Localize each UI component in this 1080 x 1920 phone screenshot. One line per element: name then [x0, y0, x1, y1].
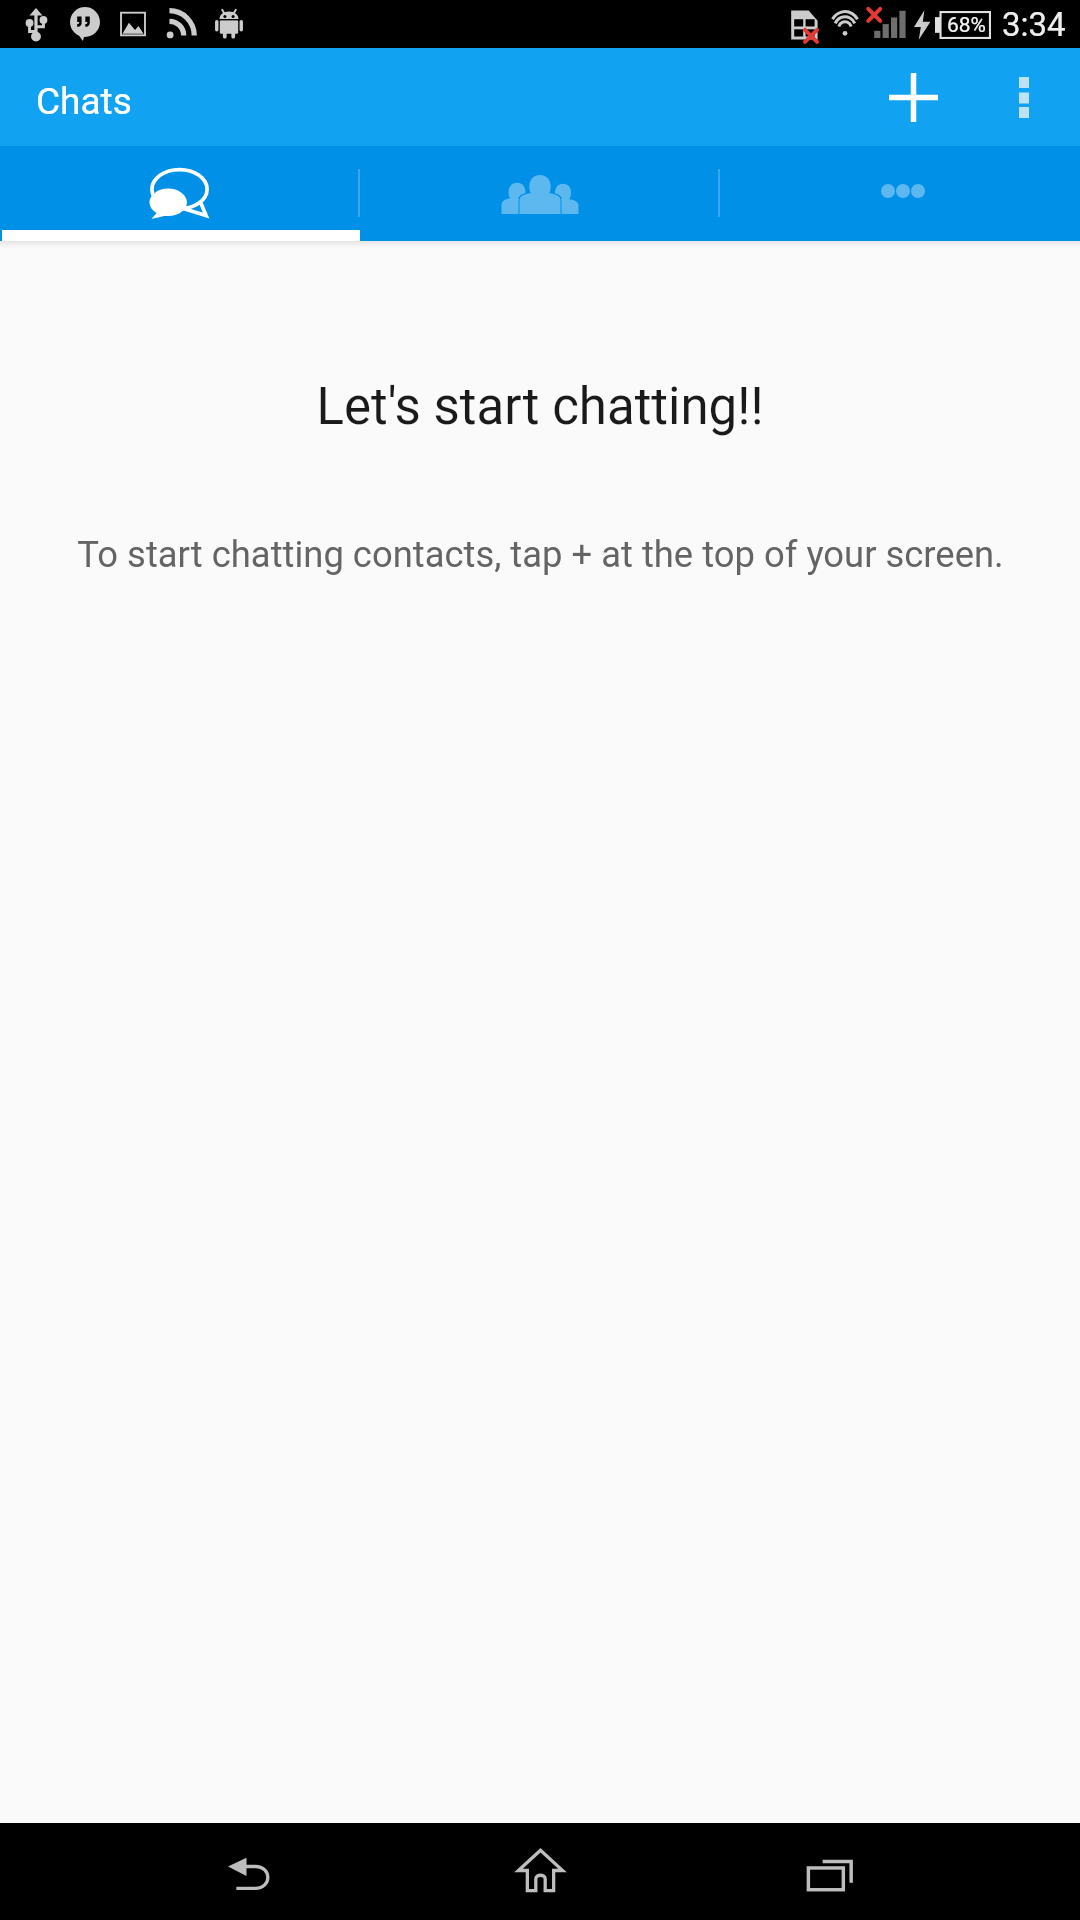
- button[interactable]: Recent apps: [770, 1823, 890, 1920]
- staticText: Let's start chatting!!: [316, 377, 764, 437]
- button[interactable]: New conversation: [864, 48, 962, 146]
- staticText: 3:34: [1002, 5, 1066, 44]
- staticText: Chats: [36, 80, 132, 123]
- staticText: To start chatting contacts, tap + at the…: [77, 533, 1004, 576]
- button[interactable]: Chats tab: [0, 146, 360, 230]
- staticText: 68%: [947, 13, 986, 38]
- button[interactable]: More options: [975, 48, 1073, 146]
- button[interactable]: Home: [480, 1823, 600, 1920]
- button[interactable]: More tab: [720, 146, 1080, 230]
- button[interactable]: People tab: [360, 146, 720, 230]
- button[interactable]: Back: [190, 1823, 310, 1920]
